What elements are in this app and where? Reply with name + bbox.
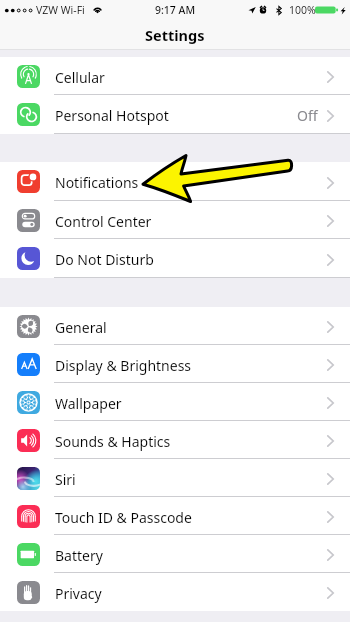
button[interactable]: Privacy <box>0 573 350 611</box>
button[interactable]: Sounds & Haptics <box>0 421 350 459</box>
button[interactable]: Do Not Disturb <box>0 239 350 278</box>
button[interactable]: Display & Brightness <box>0 345 350 383</box>
staticText: 9:17 AM <box>155 3 196 17</box>
staticText: Sounds & Haptics <box>55 432 171 451</box>
button[interactable]: Personal Hotspot <box>0 95 350 134</box>
button[interactable]: Control Center <box>0 201 350 239</box>
staticText: Control Center <box>55 212 152 231</box>
staticText: Settings <box>145 25 205 45</box>
staticText: VZW Wi-Fi <box>36 3 85 17</box>
button[interactable]: Battery <box>0 535 350 573</box>
staticText: Off <box>297 106 318 125</box>
staticText: Siri <box>55 470 76 489</box>
staticText: Notifications <box>55 173 139 192</box>
staticText: 100% <box>289 3 316 17</box>
button[interactable]: General <box>0 307 350 345</box>
staticText: Display & Brightness <box>55 356 192 375</box>
staticText: Personal Hotspot <box>55 106 169 125</box>
button[interactable]: Wallpaper <box>0 383 350 421</box>
staticText: Wallpaper <box>55 394 122 413</box>
staticText: General <box>55 318 107 337</box>
staticText: Cellular <box>55 68 105 87</box>
staticText: Privacy <box>55 584 102 603</box>
staticText: Touch ID & Passcode <box>55 508 192 527</box>
button[interactable]: Notifications <box>0 162 350 201</box>
button[interactable]: Cellular <box>0 57 350 95</box>
staticText: Battery <box>55 546 103 565</box>
button[interactable]: Touch ID & Passcode <box>0 497 350 535</box>
staticText: Do Not Disturb <box>55 250 154 269</box>
button[interactable]: Siri <box>0 459 350 497</box>
